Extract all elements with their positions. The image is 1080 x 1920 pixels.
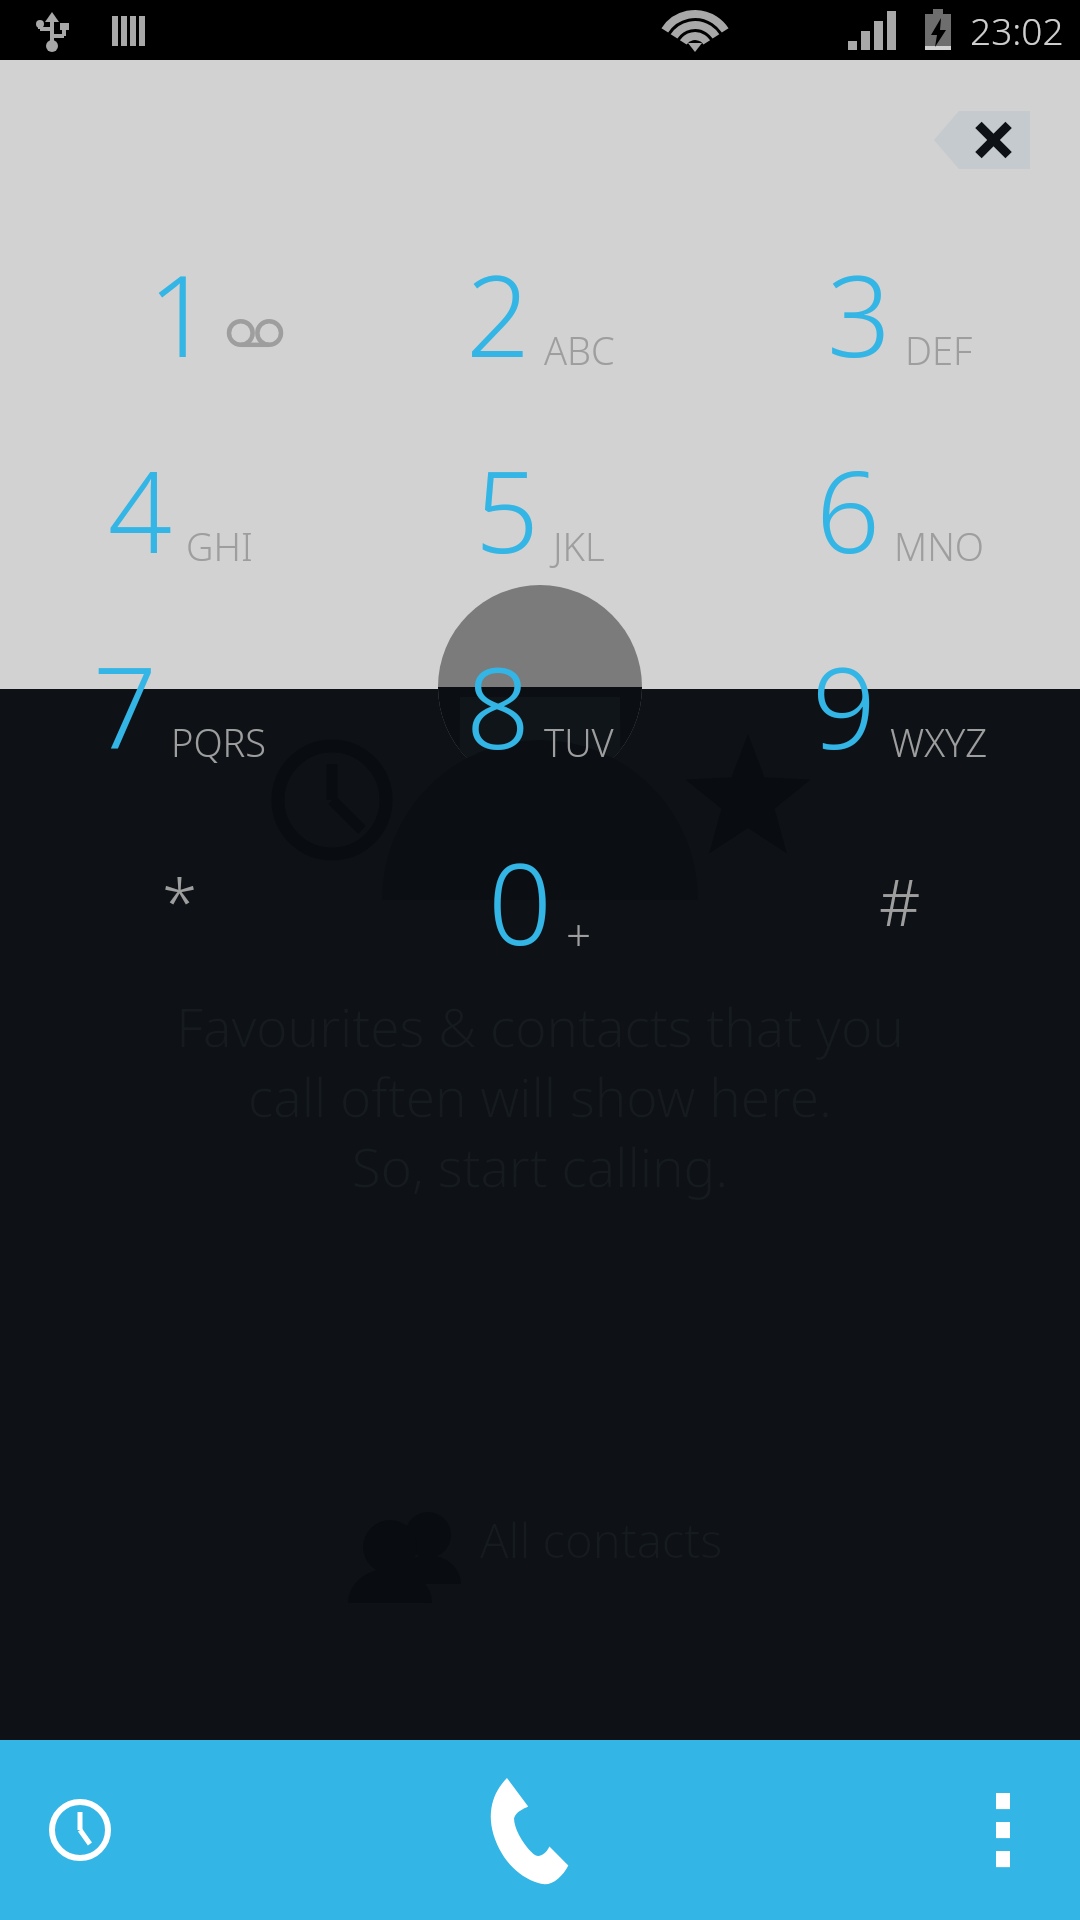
staticText: # xyxy=(879,858,921,945)
button[interactable]: Call xyxy=(440,1740,640,1920)
staticText: + xyxy=(566,904,592,964)
staticText: PQRS xyxy=(171,716,267,768)
staticText: ABC xyxy=(544,324,615,376)
staticText: 23:02 xyxy=(970,5,1064,55)
button[interactable]: 4 xyxy=(0,411,360,607)
button[interactable]: More options xyxy=(948,1750,1058,1910)
button[interactable]: * xyxy=(0,803,360,999)
button[interactable]: 9 xyxy=(720,607,1080,803)
staticText: 4 xyxy=(108,433,172,586)
staticText: 9 xyxy=(812,629,876,782)
staticText: 1 xyxy=(148,237,212,390)
staticText: 7 xyxy=(93,629,157,782)
staticText: 8 xyxy=(466,629,530,782)
button[interactable]: Call history xyxy=(20,1770,140,1890)
staticText: 6 xyxy=(816,433,880,586)
button[interactable]: 6 xyxy=(720,411,1080,607)
staticText: 5 xyxy=(475,433,539,586)
button[interactable]: 3 xyxy=(720,215,1080,411)
button[interactable]: 0 xyxy=(360,803,720,999)
staticText: * xyxy=(162,858,198,945)
staticText: 3 xyxy=(827,237,891,390)
staticText: WXYZ xyxy=(890,716,988,768)
staticText: 0 xyxy=(488,825,552,978)
staticText: MNO xyxy=(894,520,984,572)
staticText: TUV xyxy=(544,716,614,768)
button[interactable]: # xyxy=(720,803,1080,999)
staticText: GHI xyxy=(186,520,253,572)
button[interactable]: 2 xyxy=(360,215,720,411)
button[interactable]: 7 xyxy=(0,607,360,803)
staticText: JKL xyxy=(553,520,605,572)
button[interactable]: 5 xyxy=(360,411,720,607)
staticText: DEF xyxy=(905,324,973,376)
staticText: 2 xyxy=(466,237,530,390)
button[interactable]: 8 xyxy=(360,607,720,803)
button[interactable]: Backspace xyxy=(912,92,1052,188)
button[interactable]: 1 xyxy=(0,215,360,411)
